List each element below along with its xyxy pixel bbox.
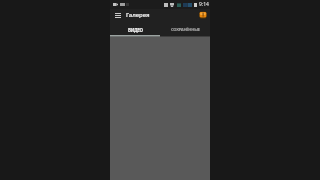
button[interactable]: ВИДЕО xyxy=(110,21,160,35)
button[interactable]: СОХРАНЁННЫЕ xyxy=(160,21,210,35)
button[interactable]: Downloads xyxy=(198,10,208,20)
staticText: Галерея xyxy=(126,11,150,19)
staticText: 9:14 xyxy=(199,1,209,8)
button[interactable]: Menu xyxy=(112,10,123,21)
staticText: ВИДЕО xyxy=(128,27,143,33)
staticText: СОХРАНЁННЫЕ xyxy=(171,27,200,33)
